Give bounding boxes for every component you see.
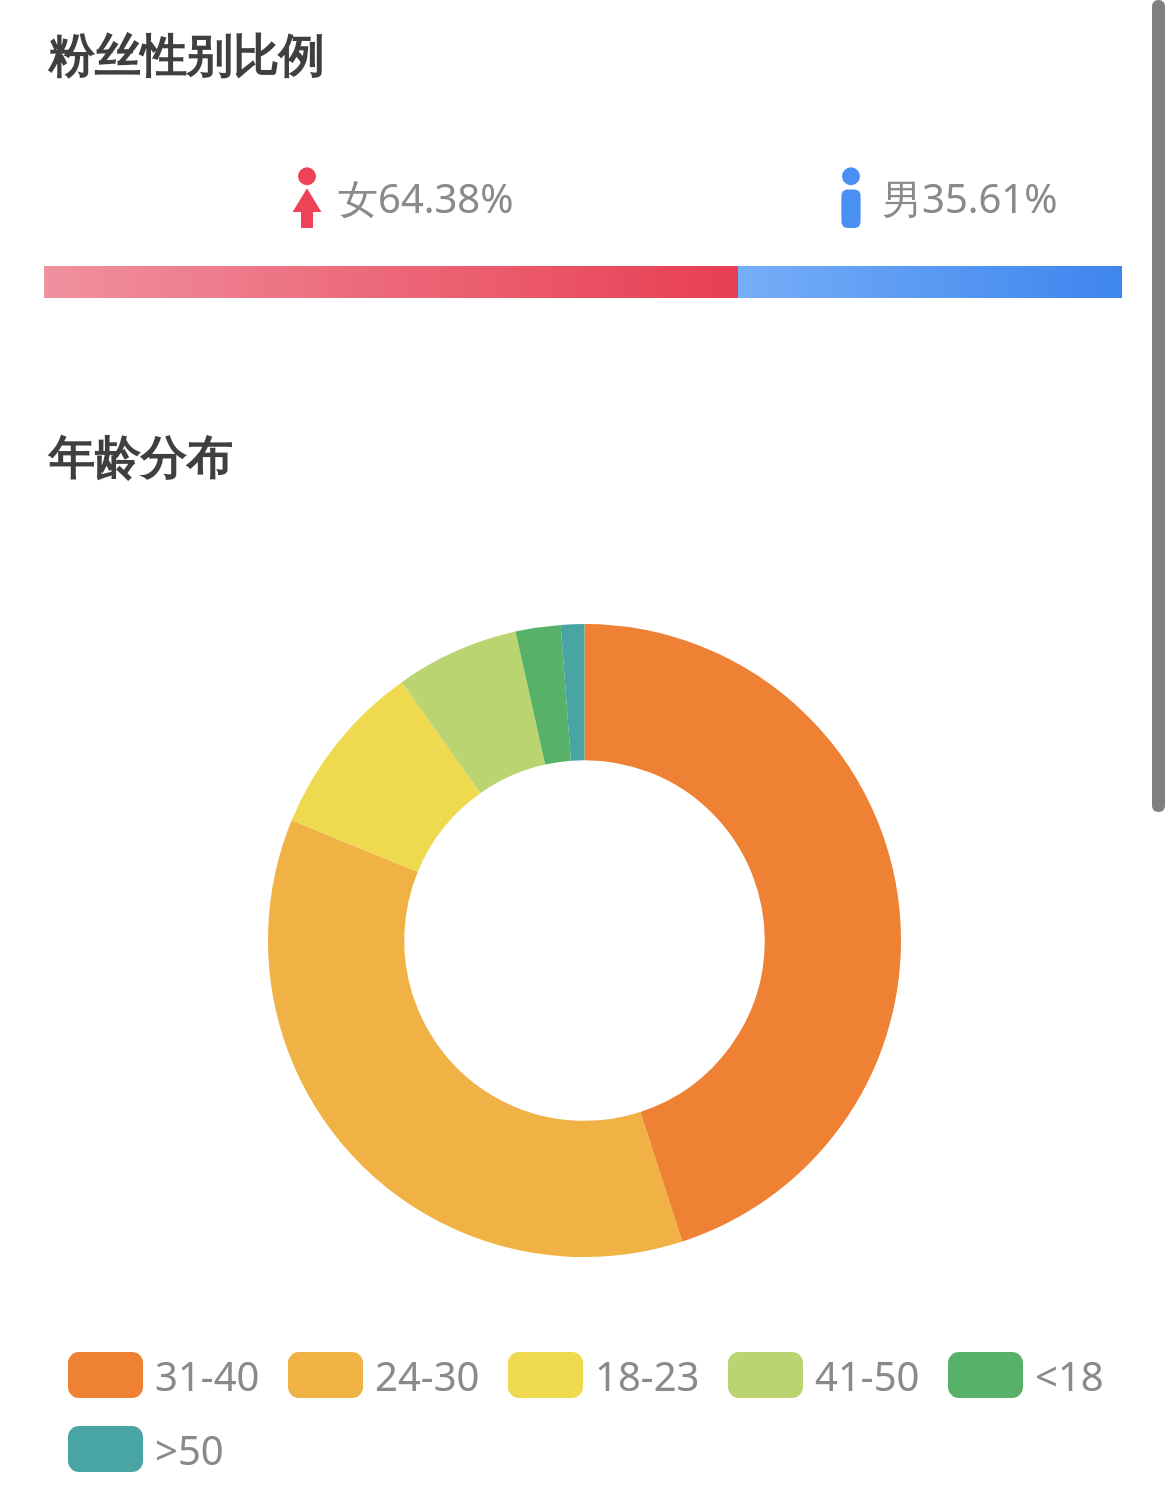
staticText: 31-40	[155, 1348, 260, 1402]
staticText: 41-50	[815, 1348, 920, 1402]
button[interactable]	[44, 266, 1122, 298]
other: Male	[836, 166, 866, 228]
button[interactable]: Female	[292, 166, 514, 228]
button[interactable]: <18	[948, 1348, 1104, 1402]
staticText: 女64.38%	[338, 170, 514, 225]
button[interactable]: 31-40	[68, 1348, 260, 1402]
staticText: 年龄分布	[48, 430, 232, 488]
button[interactable]: Male	[836, 166, 1058, 228]
staticText: <18	[1035, 1348, 1104, 1402]
staticText: 粉丝性别比例	[48, 28, 324, 86]
staticText: >50	[155, 1422, 224, 1476]
staticText: 18-23	[595, 1348, 700, 1402]
other: Female	[292, 166, 322, 228]
button[interactable]: 18-23	[508, 1348, 700, 1402]
button[interactable]: 24-30	[288, 1348, 480, 1402]
staticText: 男35.61%	[882, 170, 1058, 225]
staticText: 24-30	[375, 1348, 480, 1402]
button[interactable]: >50	[68, 1422, 224, 1476]
button[interactable]: 41-50	[728, 1348, 920, 1402]
